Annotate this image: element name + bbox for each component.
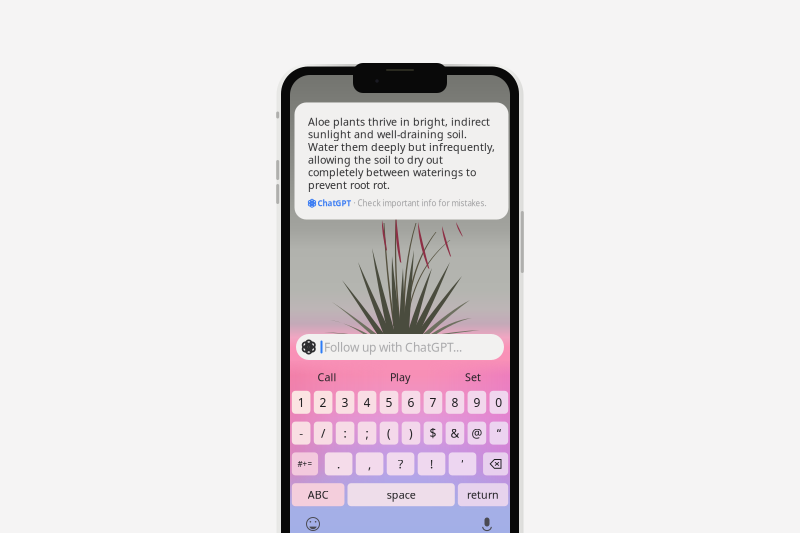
staticText: ; — [365, 425, 368, 441]
button[interactable]: - — [292, 422, 310, 445]
staticText: · Check important info for mistakes. — [351, 198, 486, 208]
button[interactable]: 1 — [292, 391, 310, 414]
staticText: Set — [465, 370, 481, 384]
staticText: ABC — [308, 488, 329, 502]
staticText: ) — [409, 425, 413, 441]
button[interactable]: 4 — [358, 391, 376, 414]
staticText: Aloe plants thrive in bright, indirect s… — [308, 114, 495, 192]
button[interactable]: space — [347, 483, 455, 506]
button[interactable]: ’ — [449, 452, 476, 475]
button[interactable]: @ — [468, 422, 486, 445]
button[interactable]: . — [325, 452, 352, 475]
button[interactable]: ! — [418, 452, 445, 475]
staticText: ChatGPT — [317, 198, 351, 208]
button[interactable]: Backspace — [483, 452, 508, 475]
staticText: 5 — [385, 394, 392, 410]
staticText: ( — [387, 425, 391, 441]
staticText: Call — [317, 370, 336, 384]
staticText: / — [321, 425, 325, 441]
staticText: Play — [390, 370, 410, 384]
button[interactable]: 2 — [314, 391, 332, 414]
button[interactable]: Follow up with ChatGPT... — [296, 334, 504, 360]
button[interactable]: Dictate — [476, 513, 498, 533]
button[interactable]: 8 — [446, 391, 464, 414]
staticText: : — [344, 425, 347, 441]
button[interactable]: 6 — [402, 391, 420, 414]
staticText: . — [337, 456, 340, 472]
button[interactable]: $ — [424, 422, 442, 445]
staticText: return — [467, 488, 499, 502]
button[interactable]: Emoji — [302, 513, 324, 533]
button[interactable]: / — [314, 422, 332, 445]
staticText: 1 — [298, 394, 305, 410]
staticText: “ — [497, 425, 501, 441]
staticText: , — [368, 456, 371, 472]
staticText: ! — [430, 456, 433, 472]
staticText: 6 — [407, 394, 414, 410]
staticText: 2 — [320, 394, 327, 410]
button[interactable]: : — [336, 422, 354, 445]
staticText: space — [387, 488, 416, 502]
button[interactable]: ABC — [292, 483, 344, 506]
button[interactable]: ? — [387, 452, 414, 475]
staticText: $ — [429, 425, 436, 441]
button[interactable]: Play — [363, 367, 436, 386]
button[interactable]: Set — [436, 367, 509, 386]
staticText: 4 — [363, 394, 370, 410]
staticText: Follow up with ChatGPT... — [324, 339, 462, 355]
button[interactable]: , — [356, 452, 383, 475]
button[interactable]: ; — [358, 422, 376, 445]
button[interactable]: & — [446, 422, 464, 445]
staticText: 7 — [429, 394, 436, 410]
staticText: - — [299, 425, 303, 441]
button[interactable]: 7 — [424, 391, 442, 414]
button[interactable]: “ — [490, 422, 508, 445]
staticText: 3 — [342, 394, 349, 410]
button[interactable]: ) — [402, 422, 420, 445]
staticText: 0 — [495, 394, 502, 410]
button[interactable]: ( — [380, 422, 398, 445]
button[interactable]: 9 — [468, 391, 486, 414]
staticText: 9 — [473, 394, 480, 410]
button[interactable]: Call — [290, 367, 363, 386]
staticText: 8 — [451, 394, 458, 410]
staticText: & — [450, 425, 459, 441]
button[interactable]: 5 — [380, 391, 398, 414]
staticText: ’ — [461, 456, 463, 472]
staticText: ? — [398, 456, 403, 472]
staticText: #+= — [297, 459, 312, 469]
button[interactable]: return — [458, 483, 508, 506]
button[interactable]: 3 — [336, 391, 354, 414]
button[interactable]: #+= — [292, 452, 318, 475]
staticText: @ — [471, 425, 482, 441]
button[interactable]: 0 — [490, 391, 508, 414]
